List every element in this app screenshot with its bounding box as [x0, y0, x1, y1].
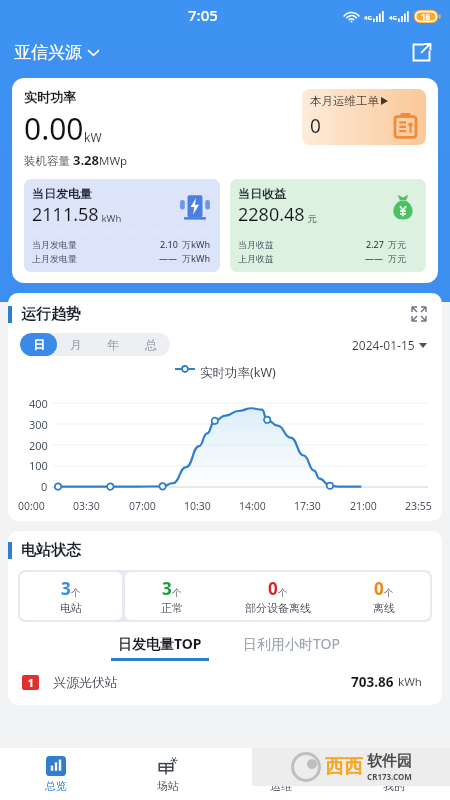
- staticText: 17:30: [294, 499, 321, 513]
- staticText: 本月运维工单: [310, 94, 379, 108]
- staticText: 万kWh: [182, 252, 212, 264]
- staticText: 0: [268, 577, 278, 600]
- button[interactable]: 当日收益: [230, 179, 426, 272]
- staticText: 200: [29, 438, 48, 453]
- staticText: kWh: [99, 212, 122, 225]
- staticText: 1: [28, 676, 34, 690]
- staticText: 电站状态: [21, 541, 81, 560]
- staticText: 元: [305, 212, 317, 225]
- staticText: 0.00: [24, 108, 84, 149]
- staticText: 3: [61, 577, 71, 600]
- staticText: 离线: [373, 601, 395, 615]
- button[interactable]: 0: [218, 572, 338, 620]
- staticText: MWp: [99, 153, 128, 169]
- staticText: 2.27: [366, 238, 384, 250]
- staticText: 100: [29, 458, 48, 473]
- staticText: 10:30: [184, 499, 211, 513]
- button[interactable]: 当日发电量: [24, 179, 220, 272]
- button[interactable]: 月: [57, 333, 94, 356]
- button[interactable]: 总: [132, 333, 170, 356]
- staticText: 西西: [325, 755, 363, 779]
- staticText: 年: [107, 337, 119, 352]
- staticText: 日: [33, 337, 45, 352]
- staticText: 当月收益: [238, 239, 274, 250]
- staticText: 4G: [389, 14, 397, 22]
- button[interactable]: 本月运维工单: [302, 89, 426, 145]
- staticText: 万元: [388, 239, 418, 250]
- button[interactable]: Share: [406, 37, 436, 67]
- staticText: 2280.48: [238, 202, 305, 227]
- staticText: 300: [29, 417, 48, 432]
- staticText: 上月收益: [238, 253, 274, 264]
- button[interactable]: 总览: [0, 748, 112, 800]
- button[interactable]: 日利用小时TOP: [239, 634, 344, 661]
- staticText: 703.86: [351, 673, 394, 691]
- button[interactable]: 场站: [112, 748, 224, 800]
- button[interactable]: 1: [22, 673, 428, 691]
- staticText: CR173.COM: [367, 771, 412, 782]
- staticText: 万元: [388, 253, 418, 264]
- button[interactable]: 年: [94, 333, 132, 356]
- button[interactable]: 日发电量TOP: [107, 634, 213, 661]
- staticText: 月: [70, 337, 82, 352]
- staticText: 正常: [161, 601, 183, 615]
- staticText: 场站: [157, 779, 179, 793]
- staticText: 23:55: [405, 499, 432, 513]
- staticText: 个: [384, 587, 394, 599]
- staticText: 部分设备离线: [245, 601, 311, 615]
- staticText: 16: [421, 11, 431, 22]
- staticText: 亚信兴源: [14, 42, 82, 63]
- staticText: 实时功率(kW): [200, 364, 276, 381]
- staticText: 07:00: [129, 499, 156, 513]
- button[interactable]: Fullscreen: [408, 303, 430, 325]
- staticText: 当月发电量: [32, 239, 77, 250]
- staticText: 上月发电量: [32, 253, 77, 264]
- button[interactable]: 3: [125, 572, 218, 620]
- staticText: ——: [365, 252, 384, 264]
- staticText: 0: [41, 479, 48, 494]
- staticText: 4G: [364, 14, 372, 22]
- staticText: 3: [162, 577, 172, 600]
- button[interactable]: 亚信兴源: [14, 40, 99, 65]
- staticText: kWh: [398, 674, 422, 690]
- staticText: 个: [172, 587, 182, 599]
- staticText: 2024-01-15: [352, 337, 415, 353]
- button[interactable]: 日: [20, 333, 57, 356]
- staticText: 0: [310, 113, 321, 139]
- staticText: 个: [71, 587, 81, 599]
- staticText: 2.10: [160, 238, 178, 250]
- button[interactable]: 我的: [337, 748, 450, 800]
- button[interactable]: 2024-01-15: [349, 334, 430, 356]
- staticText: 我的: [383, 779, 405, 793]
- staticText: 总: [145, 337, 157, 352]
- staticText: 个: [278, 587, 288, 599]
- staticText: 软件园: [367, 752, 412, 771]
- staticText: 日发电量TOP: [118, 634, 202, 653]
- staticText: 运维: [270, 779, 292, 793]
- staticText: 日利用小时TOP: [243, 634, 340, 653]
- staticText: 当日发电量: [32, 186, 92, 201]
- staticText: 2111.58: [32, 202, 99, 227]
- staticText: 当日收益: [238, 186, 286, 201]
- staticText: ——: [159, 252, 178, 264]
- staticText: 0: [374, 577, 384, 600]
- staticText: 总览: [45, 779, 67, 793]
- staticText: 7:05: [188, 5, 218, 25]
- button[interactable]: 0: [338, 572, 430, 620]
- staticText: 21:00: [350, 499, 377, 513]
- staticText: 万kWh: [182, 238, 212, 250]
- staticText: 装机容量: [24, 153, 73, 169]
- button[interactable]: 3: [20, 572, 122, 620]
- staticText: 03:30: [73, 499, 100, 513]
- staticText: 14:00: [239, 499, 266, 513]
- staticText: kW: [84, 129, 102, 145]
- button[interactable]: 运维: [224, 748, 337, 800]
- staticText: 400: [29, 396, 48, 411]
- staticText: 00:00: [18, 499, 45, 513]
- staticText: 电站: [60, 601, 82, 615]
- staticText: 运行趋势: [21, 305, 81, 324]
- staticText: 兴源光伏站: [53, 674, 118, 690]
- staticText: 实时功率: [24, 89, 76, 105]
- staticText: 3.28: [73, 151, 99, 169]
